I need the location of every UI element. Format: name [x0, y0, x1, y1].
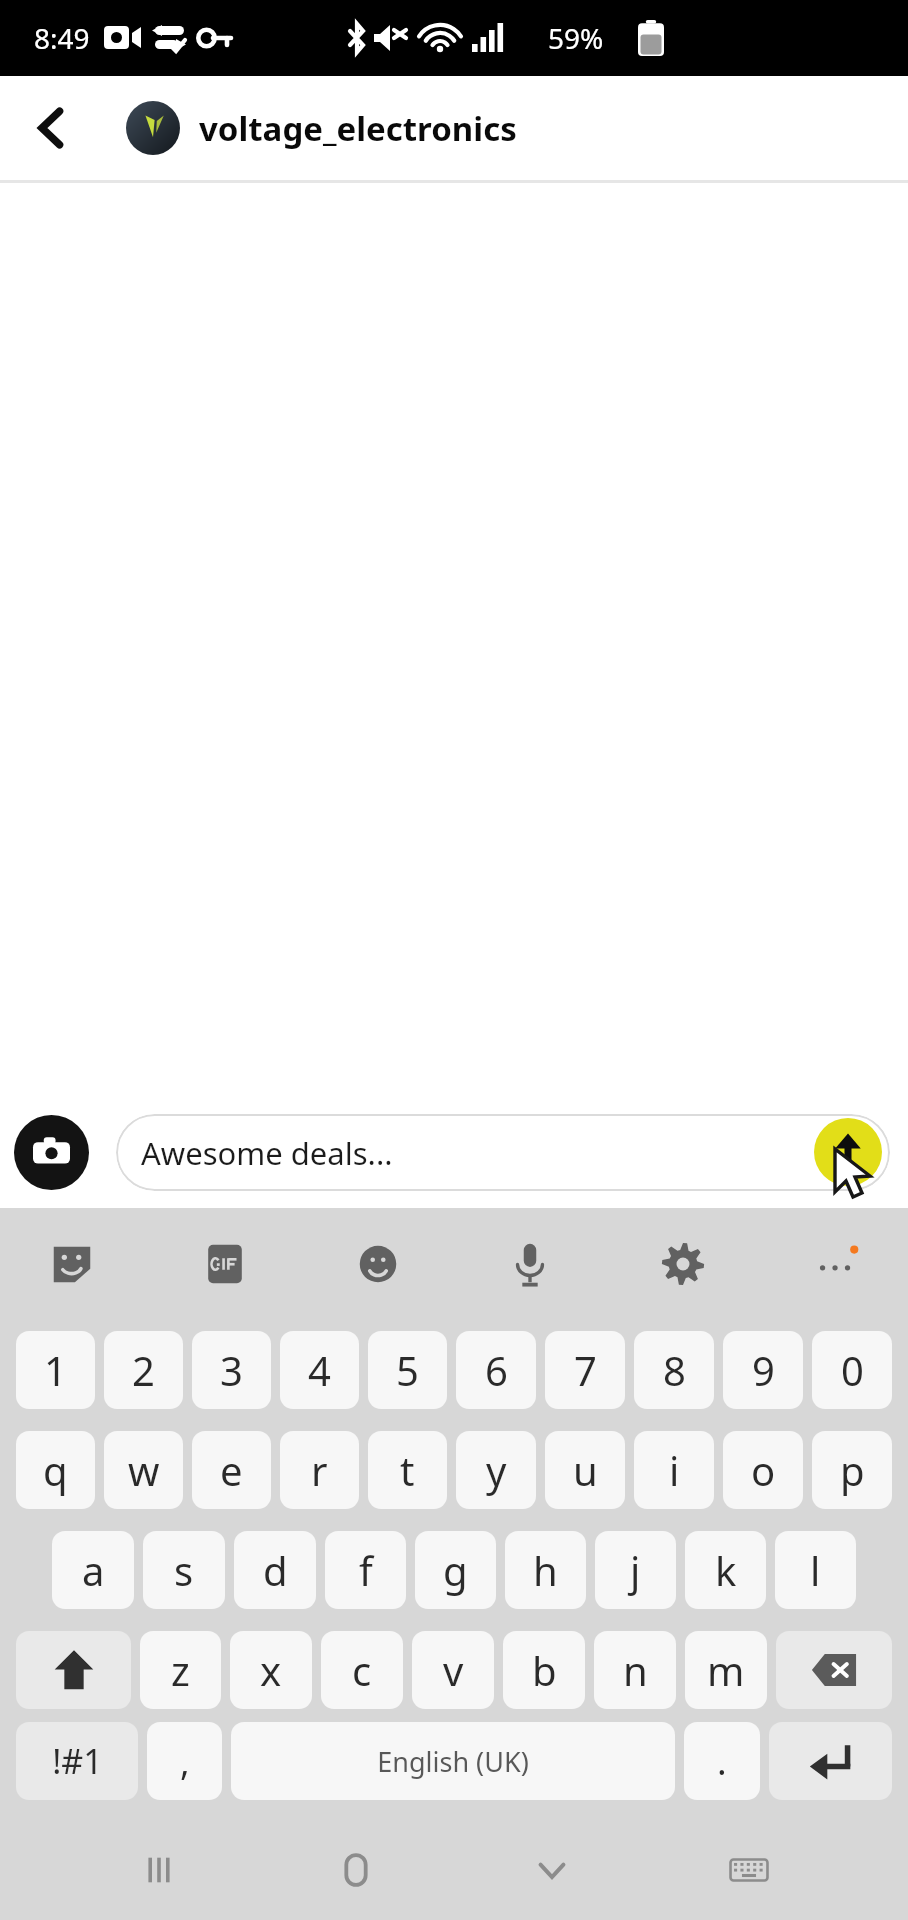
staticText: o — [751, 1443, 776, 1497]
staticText: z — [171, 1643, 190, 1697]
button[interactable]: Recent apps — [122, 1833, 196, 1907]
staticText: b — [532, 1643, 557, 1697]
button[interactable]: 0 — [812, 1331, 892, 1409]
staticText: 8 — [663, 1343, 686, 1397]
staticText: x — [260, 1643, 282, 1697]
staticText: a — [82, 1543, 105, 1597]
staticText: . — [717, 1737, 727, 1786]
button[interactable]: Enter — [769, 1722, 892, 1800]
button[interactable]: Hide keyboard — [515, 1833, 589, 1907]
button[interactable]: o — [723, 1431, 803, 1509]
staticText: 0 — [841, 1343, 864, 1397]
button[interactable]: Send — [814, 1118, 882, 1186]
staticText: 4 — [308, 1343, 331, 1397]
button[interactable]: f — [325, 1531, 406, 1609]
button[interactable]: g — [415, 1531, 496, 1609]
button[interactable]: Keyboard settings — [645, 1226, 721, 1302]
button[interactable]: 6 — [456, 1331, 536, 1409]
staticText: l — [810, 1543, 821, 1597]
button[interactable]: 4 — [280, 1331, 359, 1409]
staticText: English (UK) — [377, 1743, 529, 1780]
button[interactable]: h — [505, 1531, 586, 1609]
button[interactable]: r — [280, 1431, 359, 1509]
button[interactable]: e — [192, 1431, 271, 1509]
button[interactable]: k — [685, 1531, 766, 1609]
button[interactable]: q — [16, 1431, 95, 1509]
button[interactable]: i — [634, 1431, 714, 1509]
button[interactable]: Shift — [16, 1631, 131, 1709]
staticText: voltage_electronics — [199, 106, 517, 151]
staticText: 1 — [44, 1343, 67, 1397]
staticText: t — [400, 1443, 415, 1497]
staticText: y — [486, 1443, 507, 1497]
staticText: c — [352, 1643, 372, 1697]
button[interactable]: u — [545, 1431, 625, 1509]
staticText: s — [174, 1543, 194, 1597]
button[interactable]: 3 — [192, 1331, 271, 1409]
button[interactable]: s — [143, 1531, 225, 1609]
staticText: f — [359, 1543, 373, 1597]
button[interactable]: w — [104, 1431, 183, 1509]
button[interactable]: t — [368, 1431, 447, 1509]
button[interactable]: b — [503, 1631, 585, 1709]
button[interactable]: l — [775, 1531, 856, 1609]
button[interactable]: Back — [14, 90, 90, 166]
button[interactable]: More options — [798, 1226, 874, 1302]
button[interactable]: Stickers — [34, 1226, 110, 1302]
staticText: v — [443, 1643, 464, 1697]
button[interactable]: a — [52, 1531, 134, 1609]
button[interactable]: 5 — [368, 1331, 447, 1409]
staticText: n — [623, 1643, 648, 1697]
button[interactable]: Awesome deals... — [116, 1114, 890, 1191]
button[interactable]: 9 — [723, 1331, 803, 1409]
button[interactable]: voltage_electronics — [126, 101, 517, 155]
button[interactable]: GIF — [187, 1226, 263, 1302]
button[interactable]: Change keyboard — [712, 1833, 786, 1907]
button[interactable]: . — [684, 1722, 760, 1800]
button[interactable]: Camera — [14, 1115, 89, 1190]
button[interactable]: m — [685, 1631, 767, 1709]
staticText: d — [263, 1543, 288, 1597]
button[interactable]: 2 — [104, 1331, 183, 1409]
staticText: 5 — [396, 1343, 419, 1397]
button[interactable]: d — [234, 1531, 316, 1609]
staticText: 6 — [485, 1343, 508, 1397]
button[interactable]: Home — [319, 1833, 393, 1907]
button[interactable]: Emoji — [340, 1226, 416, 1302]
staticText: 7 — [574, 1343, 597, 1397]
button[interactable]: z — [140, 1631, 221, 1709]
button[interactable]: p — [812, 1431, 892, 1509]
staticText: !#1 — [52, 1738, 103, 1784]
staticText: , — [180, 1737, 190, 1786]
staticText: e — [220, 1443, 243, 1497]
staticText: w — [128, 1443, 160, 1497]
staticText: i — [669, 1443, 680, 1497]
staticText: 2 — [132, 1343, 155, 1397]
button[interactable]: !#1 — [16, 1722, 138, 1800]
button[interactable]: j — [595, 1531, 676, 1609]
button[interactable]: 1 — [16, 1331, 95, 1409]
button[interactable]: Backspace — [776, 1631, 892, 1709]
button[interactable]: English (UK) — [231, 1722, 675, 1800]
staticText: 59% — [548, 19, 604, 57]
button[interactable]: v — [412, 1631, 494, 1709]
staticText: k — [715, 1543, 737, 1597]
staticText: p — [840, 1443, 865, 1497]
button[interactable]: 7 — [545, 1331, 625, 1409]
button[interactable]: c — [321, 1631, 403, 1709]
staticText: 3 — [220, 1343, 243, 1397]
staticText: r — [311, 1443, 328, 1497]
button[interactable]: n — [594, 1631, 676, 1709]
staticText: g — [443, 1543, 468, 1597]
staticText: 8:49 — [34, 19, 90, 57]
staticText: m — [707, 1643, 745, 1697]
staticText: Awesome deals... — [141, 1132, 393, 1174]
button[interactable]: Voice input — [492, 1226, 568, 1302]
button[interactable]: y — [456, 1431, 536, 1509]
staticText: 9 — [752, 1343, 775, 1397]
staticText: h — [533, 1543, 558, 1597]
button[interactable]: x — [230, 1631, 312, 1709]
button[interactable]: , — [147, 1722, 222, 1800]
button[interactable]: 8 — [634, 1331, 714, 1409]
staticText: q — [43, 1443, 68, 1497]
